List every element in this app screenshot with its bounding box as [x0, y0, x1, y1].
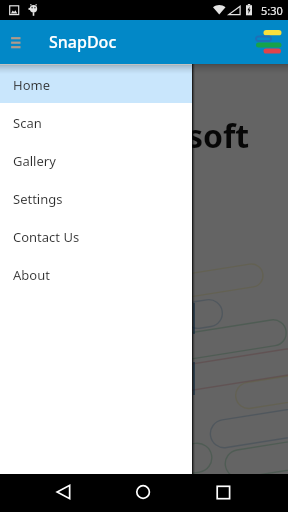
button[interactable]: Back [44, 474, 82, 512]
button[interactable]: Home [124, 474, 162, 512]
button[interactable]: Settings [0, 179, 192, 217]
button[interactable]: Scan [0, 103, 192, 141]
button[interactable]: App logo [250, 25, 284, 59]
button[interactable]: About [0, 255, 192, 293]
staticText: Scan [13, 114, 42, 132]
staticText: SnapDoc [49, 31, 117, 53]
button[interactable]: Home [0, 65, 192, 103]
staticText: About [13, 266, 50, 284]
button[interactable]: Gallery [0, 141, 192, 179]
button[interactable]: Open navigation drawer [4, 25, 38, 59]
staticText: Microsoft [97, 114, 250, 158]
staticText: Settings [13, 190, 63, 208]
staticText: Gallery [13, 152, 56, 170]
staticText: Home [13, 76, 50, 94]
staticText: Contact Us [13, 228, 80, 246]
staticText: 5:30 [261, 3, 283, 18]
button[interactable]: Recent apps [204, 474, 242, 512]
button[interactable]: Contact Us [0, 217, 192, 255]
